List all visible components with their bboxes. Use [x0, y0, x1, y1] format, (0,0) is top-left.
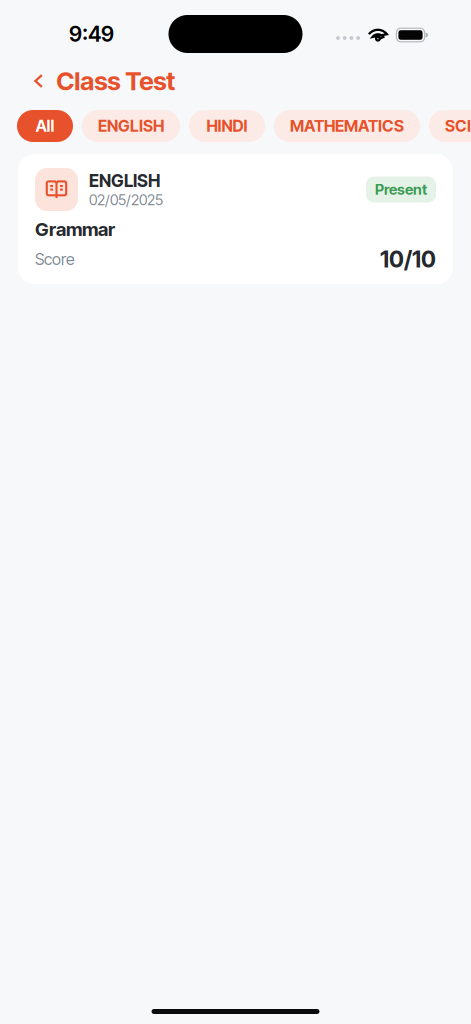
button[interactable]: ENGLISH: [18, 154, 453, 284]
staticText: 02/05/2025: [89, 191, 163, 209]
staticText: ENGLISH: [98, 116, 164, 136]
staticText: MATHEMATICS: [290, 116, 404, 136]
staticText: Score: [35, 250, 75, 269]
button[interactable]: SCIENCE: [429, 110, 471, 142]
button[interactable]: ENGLISH: [82, 110, 180, 142]
staticText: 9:49: [69, 21, 114, 47]
button[interactable]: HINDI: [189, 110, 265, 142]
staticText: ENGLISH: [89, 170, 160, 191]
button[interactable]: Back: [0, 66, 56, 96]
staticText: Present: [375, 181, 427, 198]
staticText: SCIENCE: [445, 116, 471, 136]
staticText: 10/10: [380, 246, 436, 273]
button[interactable]: MATHEMATICS: [274, 110, 420, 142]
staticText: All: [35, 116, 54, 136]
staticText: Grammar: [35, 218, 115, 241]
staticText: Class Test: [56, 66, 175, 96]
staticText: HINDI: [206, 116, 247, 136]
button[interactable]: All: [17, 110, 73, 142]
